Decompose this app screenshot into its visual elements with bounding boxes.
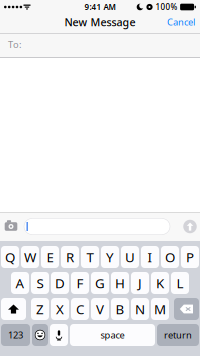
button[interactable]: Send [178,214,200,238]
staticText: B [115,300,124,318]
staticText: G [95,274,105,292]
button[interactable]: Q [1,246,19,268]
button[interactable]: E [41,246,59,268]
button[interactable]: P [181,246,199,268]
button[interactable]: H [111,272,129,294]
staticText: M [154,300,166,318]
button[interactable]: D [51,272,69,294]
staticText: Z [36,300,44,318]
staticText: U [125,248,135,266]
staticText: E [46,248,53,266]
staticText: Cancel [167,16,195,28]
staticText: J [138,274,142,292]
button[interactable]: To: [0,33,200,58]
staticText: T [86,248,93,266]
button[interactable]: K [151,272,169,294]
staticText: New Message [64,15,135,29]
button[interactable]: L [171,272,189,294]
staticText: X [56,300,64,318]
button[interactable]: A [11,272,29,294]
button[interactable]: U [121,246,139,268]
button[interactable]: F [71,272,89,294]
button[interactable]: N [131,298,149,320]
staticText: L [176,274,183,292]
button[interactable]: X [51,298,69,320]
staticText: 9:41 AM [84,2,115,12]
staticText: Y [106,248,114,266]
staticText: V [96,300,104,318]
button[interactable] [174,298,199,320]
staticText: O [165,248,175,266]
button[interactable]: I [141,246,159,268]
button[interactable]: Z [31,298,49,320]
button[interactable]: B [111,298,129,320]
staticText: K [156,274,164,292]
staticText: P [186,248,194,266]
button[interactable]: S [31,272,49,294]
staticText: A [15,274,24,292]
button[interactable] [1,298,26,320]
button[interactable]: O [161,246,179,268]
button[interactable]: Y [101,246,119,268]
button[interactable]: Cancel [167,13,200,34]
button[interactable]: M [151,298,169,320]
button[interactable]: V [91,298,109,320]
staticText: C [76,300,84,318]
button[interactable]: return [157,324,199,346]
staticText: F [76,274,83,292]
staticText: Q [5,248,15,266]
button[interactable] [50,324,68,346]
button[interactable]: R [61,246,79,268]
staticText: N [135,300,145,318]
staticText: I [147,248,152,266]
staticText: space [100,329,124,341]
button[interactable]: Camera [0,213,24,239]
staticText: D [55,274,65,292]
button[interactable] [32,324,48,346]
staticText: W [24,248,36,266]
staticText: 100% [155,2,177,12]
staticText: 123 [8,329,23,341]
staticText: S [36,274,43,292]
button[interactable]: J [131,272,149,294]
button[interactable]: T [81,246,99,268]
button[interactable]: space [70,324,155,346]
staticText: To: [8,38,22,51]
button[interactable]: C [71,298,89,320]
staticText: H [115,274,125,292]
button[interactable]: G [91,272,109,294]
button[interactable]: W [21,246,39,268]
button[interactable]: 123 [1,324,30,346]
staticText: return [164,329,192,341]
staticText: R [66,248,74,266]
